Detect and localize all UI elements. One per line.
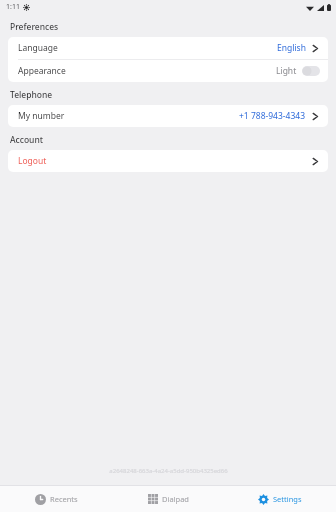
staticText: My number xyxy=(18,110,65,122)
staticText: a2648248-663a-4a24-a5dd-950b4325ed66 xyxy=(109,467,228,475)
staticText: Logout xyxy=(18,155,47,167)
staticText: Settings xyxy=(273,494,302,504)
staticText: +1 788-943-4343 xyxy=(239,110,306,122)
button[interactable]: Appearance xyxy=(8,60,328,82)
button[interactable]: Appearance theme toggle xyxy=(302,66,320,76)
staticText: Telephone xyxy=(10,89,53,101)
staticText: Light xyxy=(276,65,297,77)
button[interactable]: Logout xyxy=(8,150,328,172)
staticText: English xyxy=(277,42,306,54)
staticText: Preferences xyxy=(10,21,59,33)
button[interactable]: Language xyxy=(8,37,328,59)
button[interactable]: Settings xyxy=(224,486,336,512)
staticText: Language xyxy=(18,42,58,54)
staticText: Recents xyxy=(50,494,78,504)
button[interactable]: Dialpad xyxy=(112,486,224,512)
staticText: 1:11 xyxy=(6,2,20,12)
staticText: Dialpad xyxy=(162,494,189,504)
staticText: Appearance xyxy=(18,65,66,77)
staticText: Account xyxy=(10,134,44,146)
button[interactable]: My number xyxy=(8,105,328,127)
button[interactable]: Recents xyxy=(0,486,112,512)
